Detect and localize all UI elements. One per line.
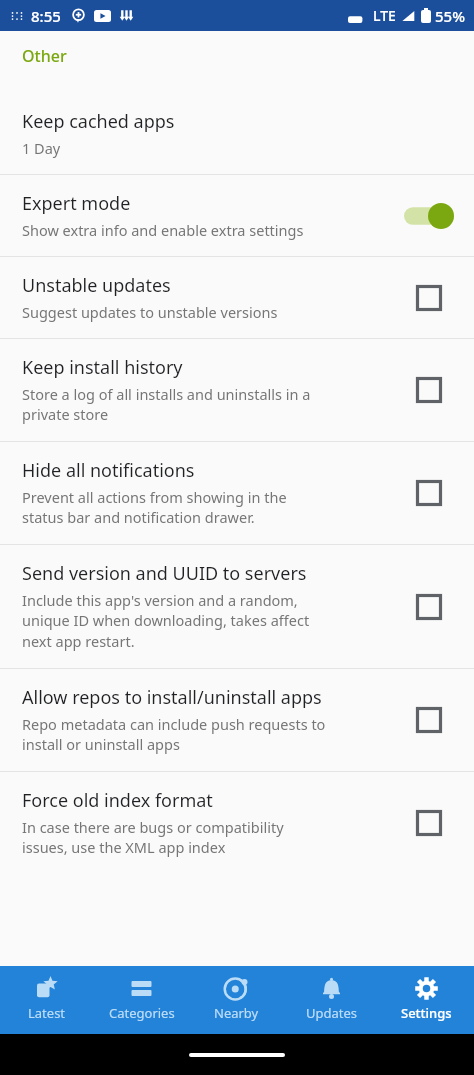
staticText: Hide all notifications [22,458,195,483]
button[interactable]: Force old index format checkbox [416,810,442,836]
staticText: Suggest updates to unstable versions [22,302,278,322]
button[interactable]: Expert mode [0,175,474,256]
button[interactable]: Send version and UUID to servers checkbo… [416,594,442,620]
button[interactable]: Allow repos to install/uninstall apps ch… [416,707,442,733]
staticText: Latest [28,1004,66,1022]
button[interactable]: Send version and UUID to servers [0,545,474,668]
staticText: 55% [435,6,465,26]
button[interactable]: Hide all notifications [0,442,474,544]
button[interactable]: Keep install history checkbox [416,377,442,403]
button[interactable]: Categories [94,966,189,1034]
staticText: Updates [306,1004,358,1022]
button[interactable]: Hide all notifications checkbox [416,480,442,506]
staticText: Keep install history [22,355,183,380]
button[interactable]: Latest [0,966,94,1034]
button[interactable]: Updates [284,966,379,1034]
staticText: In case there are bugs or compatibility … [22,817,284,858]
staticText: Prevent all actions from showing in the … [22,487,287,528]
staticText: Categories [109,1004,175,1022]
staticText: Unstable updates [22,273,171,298]
staticText: Repo metadata can include push requests … [22,714,326,755]
button[interactable]: Settings [379,966,474,1034]
button[interactable]: Expert mode toggle [404,203,454,229]
button[interactable]: Unstable updates [0,257,474,338]
staticText: Send version and UUID to servers [22,561,307,586]
staticText: Allow repos to install/uninstall apps [22,685,322,710]
staticText: Include this app's version and a random,… [22,590,310,652]
button[interactable]: Allow repos to install/uninstall apps [0,669,474,771]
button[interactable]: Unstable updates checkbox [416,285,442,311]
staticText: Expert mode [22,191,131,216]
button[interactable]: Force old index format [0,772,474,874]
staticText: Show extra info and enable extra setting… [22,220,304,240]
staticText: Force old index format [22,788,213,813]
button[interactable]: Keep install history [0,339,474,441]
staticText: Nearby [214,1004,259,1022]
staticText: Settings [401,1004,452,1022]
staticText: 8:55 [31,6,61,26]
staticText: LTE [373,6,396,25]
button[interactable]: Nearby [189,966,284,1034]
staticText: 1 Day [22,138,61,158]
staticText: Store a log of all installs and uninstal… [22,384,311,425]
button[interactable]: Keep cached apps [0,93,474,174]
staticText: Keep cached apps [22,109,175,134]
staticText: Other [22,45,67,67]
